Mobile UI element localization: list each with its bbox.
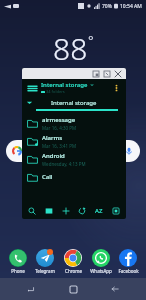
staticText: 34 folders <box>46 89 65 94</box>
button[interactable]: Close <box>112 68 123 79</box>
staticText: 88 <box>53 28 88 69</box>
button[interactable]: Telegram <box>32 249 58 274</box>
staticText: Mar 16, 3:41 PM <box>42 143 77 149</box>
button[interactable]: Internal storage <box>22 96 126 109</box>
button[interactable]: WhatsApp <box>88 249 114 274</box>
staticText: Chrome <box>65 268 82 274</box>
staticText: Wednesday, 4:13 PM <box>42 161 86 167</box>
button[interactable]: Facebook <box>115 249 141 274</box>
staticText: Alarms <box>42 134 63 142</box>
button[interactable]: Google search <box>6 140 140 162</box>
staticText: 10:54 AM <box>120 3 142 10</box>
button[interactable]: Phone <box>5 249 31 274</box>
staticText: airmessage <box>42 116 76 124</box>
button[interactable]: Select <box>109 204 123 218</box>
staticText: Phone <box>11 268 25 274</box>
staticText: Internal storage <box>51 99 97 107</box>
button[interactable]: Alarms <box>22 132 126 150</box>
button[interactable]: Expand to full screen <box>101 68 112 79</box>
button[interactable]: 88 <box>0 28 146 69</box>
button[interactable]: More options <box>110 82 122 94</box>
staticText: Mar 16, 4:30 PM <box>42 125 77 131</box>
button[interactable]: Home <box>62 278 84 300</box>
button[interactable]: Chrome <box>60 249 86 274</box>
staticText: WhatsApp <box>90 268 112 274</box>
button[interactable]: Android <box>22 150 126 168</box>
button[interactable]: Sort A to Z <box>92 204 106 218</box>
staticText: ° <box>88 31 94 49</box>
button[interactable]: Add <box>59 204 73 218</box>
button[interactable]: Recents <box>20 278 42 300</box>
staticText: Call <box>42 173 53 181</box>
staticText: 70% <box>102 3 112 10</box>
button[interactable]: Search <box>25 204 39 218</box>
button[interactable]: Picture in picture <box>90 68 101 79</box>
button[interactable]: Call <box>22 168 126 186</box>
staticText: Internal storage <box>41 81 88 89</box>
staticText: AZ <box>95 207 103 215</box>
staticText: Android <box>42 152 65 160</box>
other: Google search <box>12 146 22 156</box>
button[interactable]: Open navigation menu <box>26 82 38 94</box>
other: Voice search <box>124 146 134 156</box>
button[interactable]: airmessage <box>22 114 126 132</box>
staticText: Facebook <box>118 268 139 274</box>
staticText: Telegram <box>35 268 55 274</box>
button[interactable]: Back <box>104 278 126 300</box>
button[interactable]: List view <box>42 204 56 218</box>
button[interactable]: Refresh <box>75 204 89 218</box>
